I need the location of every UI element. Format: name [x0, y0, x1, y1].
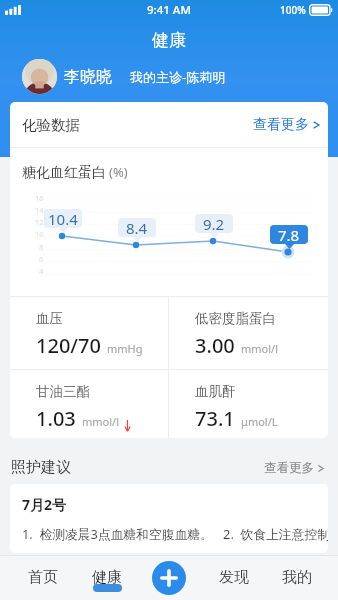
staticText: 我的主诊-陈莉明: [130, 68, 226, 86]
staticText: 甘油三酯: [36, 383, 90, 400]
staticText: 查看更多: [264, 460, 314, 476]
staticText: 73.1: [195, 405, 235, 432]
staticText: 首页: [28, 568, 58, 587]
staticText: mmol/l: [82, 414, 119, 429]
staticText: 9.2: [203, 214, 225, 233]
button[interactable]: 低密度脂蛋白: [169, 297, 328, 369]
staticText: 4: [39, 266, 44, 276]
staticText: 7月2号: [22, 495, 67, 514]
staticText: 8.4: [126, 218, 148, 237]
button[interactable]: 血压: [10, 297, 168, 369]
button[interactable]: Add: [152, 561, 186, 595]
staticText: 李晓晓: [64, 67, 112, 87]
staticText: mmol/l: [241, 341, 278, 356]
button[interactable]: 健康: [79, 555, 135, 600]
staticText: (%): [109, 163, 128, 181]
staticText: 我的: [282, 568, 312, 587]
staticText: 3.00: [195, 332, 235, 359]
staticText: 120/70: [36, 332, 101, 359]
button[interactable]: 甘油三酯: [10, 370, 168, 438]
staticText: 健康: [92, 568, 122, 587]
staticText: 12: [35, 217, 44, 227]
staticText: 健康: [152, 30, 186, 48]
button[interactable]: 查看更多: [264, 460, 326, 476]
button[interactable]: 血肌酐: [169, 370, 328, 438]
staticText: 10: [35, 229, 44, 239]
staticText: 发现: [219, 568, 249, 587]
button[interactable]: 发现: [206, 555, 262, 600]
staticText: 14: [35, 205, 44, 215]
staticText: 血肌酐: [195, 383, 236, 400]
staticText: 16: [35, 193, 44, 203]
staticText: 血压: [36, 310, 63, 327]
staticText: 7.8: [278, 225, 300, 244]
staticText: 照护建议: [11, 458, 71, 477]
staticText: 10.4: [48, 209, 78, 228]
staticText: 低密度脂蛋白: [195, 310, 276, 327]
staticText: 糖化血红蛋白: [22, 164, 106, 182]
button[interactable]: 首页: [15, 555, 71, 600]
staticText: 化验数据: [22, 116, 80, 134]
staticText: 1. 检测凌晨3点血糖和空腹血糖。 2. 饮食上注意控制主食和副食搭配。: [22, 525, 328, 542]
button[interactable]: 7月2号: [10, 484, 328, 553]
staticText: μmol/L: [241, 414, 278, 429]
staticText: 100%: [280, 3, 306, 17]
staticText: 查看更多: [253, 116, 309, 134]
button[interactable]: 我的: [269, 555, 325, 600]
button[interactable]: 化验数据: [22, 102, 322, 147]
staticText: mmHg: [107, 341, 143, 356]
staticText: 1.03: [36, 405, 76, 432]
staticText: 9:41 AM: [147, 2, 191, 18]
staticText: 8: [39, 242, 44, 252]
staticText: 6: [39, 254, 44, 264]
